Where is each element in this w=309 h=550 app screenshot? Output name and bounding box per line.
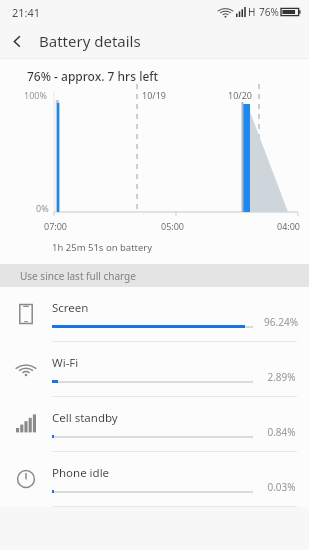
staticText: 10/19 <box>142 89 166 101</box>
staticText: 76% - approx. 7 hrs left <box>27 68 159 84</box>
staticText: 07:00 <box>44 220 68 232</box>
staticText: 76% <box>259 5 279 19</box>
staticText: 04:00 <box>277 220 301 232</box>
staticText: Use since last full charge <box>20 269 136 283</box>
staticText: Cell standby <box>52 410 118 426</box>
staticText: H <box>248 5 256 19</box>
staticText: 10/20 <box>228 89 252 101</box>
staticText: 05:00 <box>161 220 185 232</box>
staticText: 0% <box>36 202 49 214</box>
staticText: Wi-Fi <box>52 355 79 371</box>
staticText: 1h 25m 51s on battery <box>52 241 309 254</box>
button[interactable]: Cell standby <box>0 397 309 451</box>
staticText: 0.03% <box>267 480 296 494</box>
staticText: 2.89% <box>267 370 296 384</box>
staticText: 100% <box>24 89 47 101</box>
staticText: Phone idle <box>52 465 110 481</box>
staticText: 21:41 <box>12 5 41 20</box>
button[interactable]: Phone idle <box>0 452 309 506</box>
staticText: Battery details <box>39 31 141 51</box>
button[interactable]: Screen <box>0 287 309 341</box>
staticText: Screen <box>52 300 89 316</box>
button[interactable]: Wi-Fi <box>0 342 309 396</box>
staticText: 0.84% <box>267 425 296 439</box>
button[interactable]: Back <box>0 24 34 58</box>
staticText: 96.24% <box>264 315 298 329</box>
